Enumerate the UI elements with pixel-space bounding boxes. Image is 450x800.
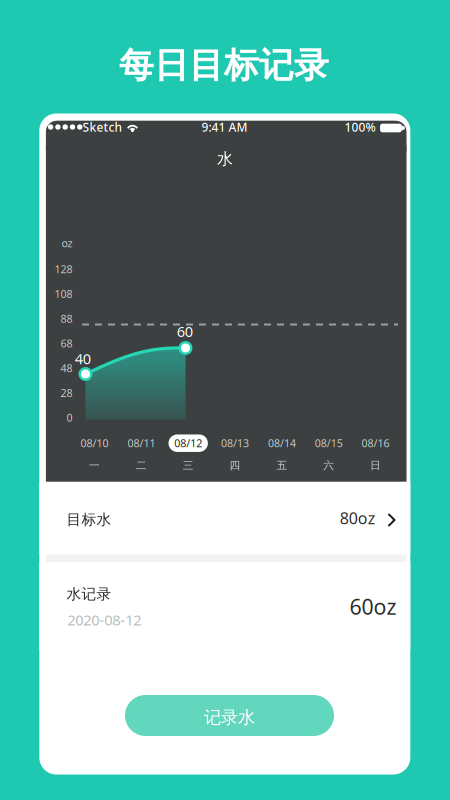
staticText: 二 [136,459,147,472]
staticText: 四 [230,459,241,472]
staticText: 08/14 [268,436,296,450]
staticText: 08/13 [221,436,249,450]
staticText: 08/16 [362,436,390,450]
staticText: 2020-08-12 [67,610,141,629]
staticText: 128 [54,262,72,276]
staticText: 六 [323,459,334,472]
staticText: 88 [60,312,72,326]
staticText: 五 [276,459,287,472]
staticText: 一 [89,459,100,472]
staticText: 每日目标记录 [119,44,329,87]
staticText: 48 [60,361,72,375]
staticText: 三 [183,459,194,472]
staticText: 0 [66,410,72,425]
button[interactable]: 记录水 [125,695,334,736]
staticText: 80oz [340,507,376,529]
staticText: 水 [217,149,233,169]
button[interactable]: 目标水 [39,482,410,554]
staticText: 108 [54,287,72,301]
staticText: 08/11 [127,436,155,450]
staticText: 记录水 [204,707,255,728]
staticText: 目标水 [66,511,111,529]
staticText: oz [61,236,72,250]
staticText: 08/15 [315,436,343,450]
staticText: 08/10 [80,436,108,450]
staticText: 08/12 [174,436,202,450]
staticText: 68 [60,336,72,350]
staticText: 100% [344,119,375,135]
staticText: 28 [60,386,72,400]
staticText: 60 [177,322,193,341]
staticText: 60oz [349,592,396,621]
staticText: 40 [75,349,91,368]
staticText: 9:41 AM [201,119,247,135]
staticText: 水记录 [66,585,111,603]
staticText: Sketch [82,119,122,135]
staticText: 日 [370,459,381,472]
